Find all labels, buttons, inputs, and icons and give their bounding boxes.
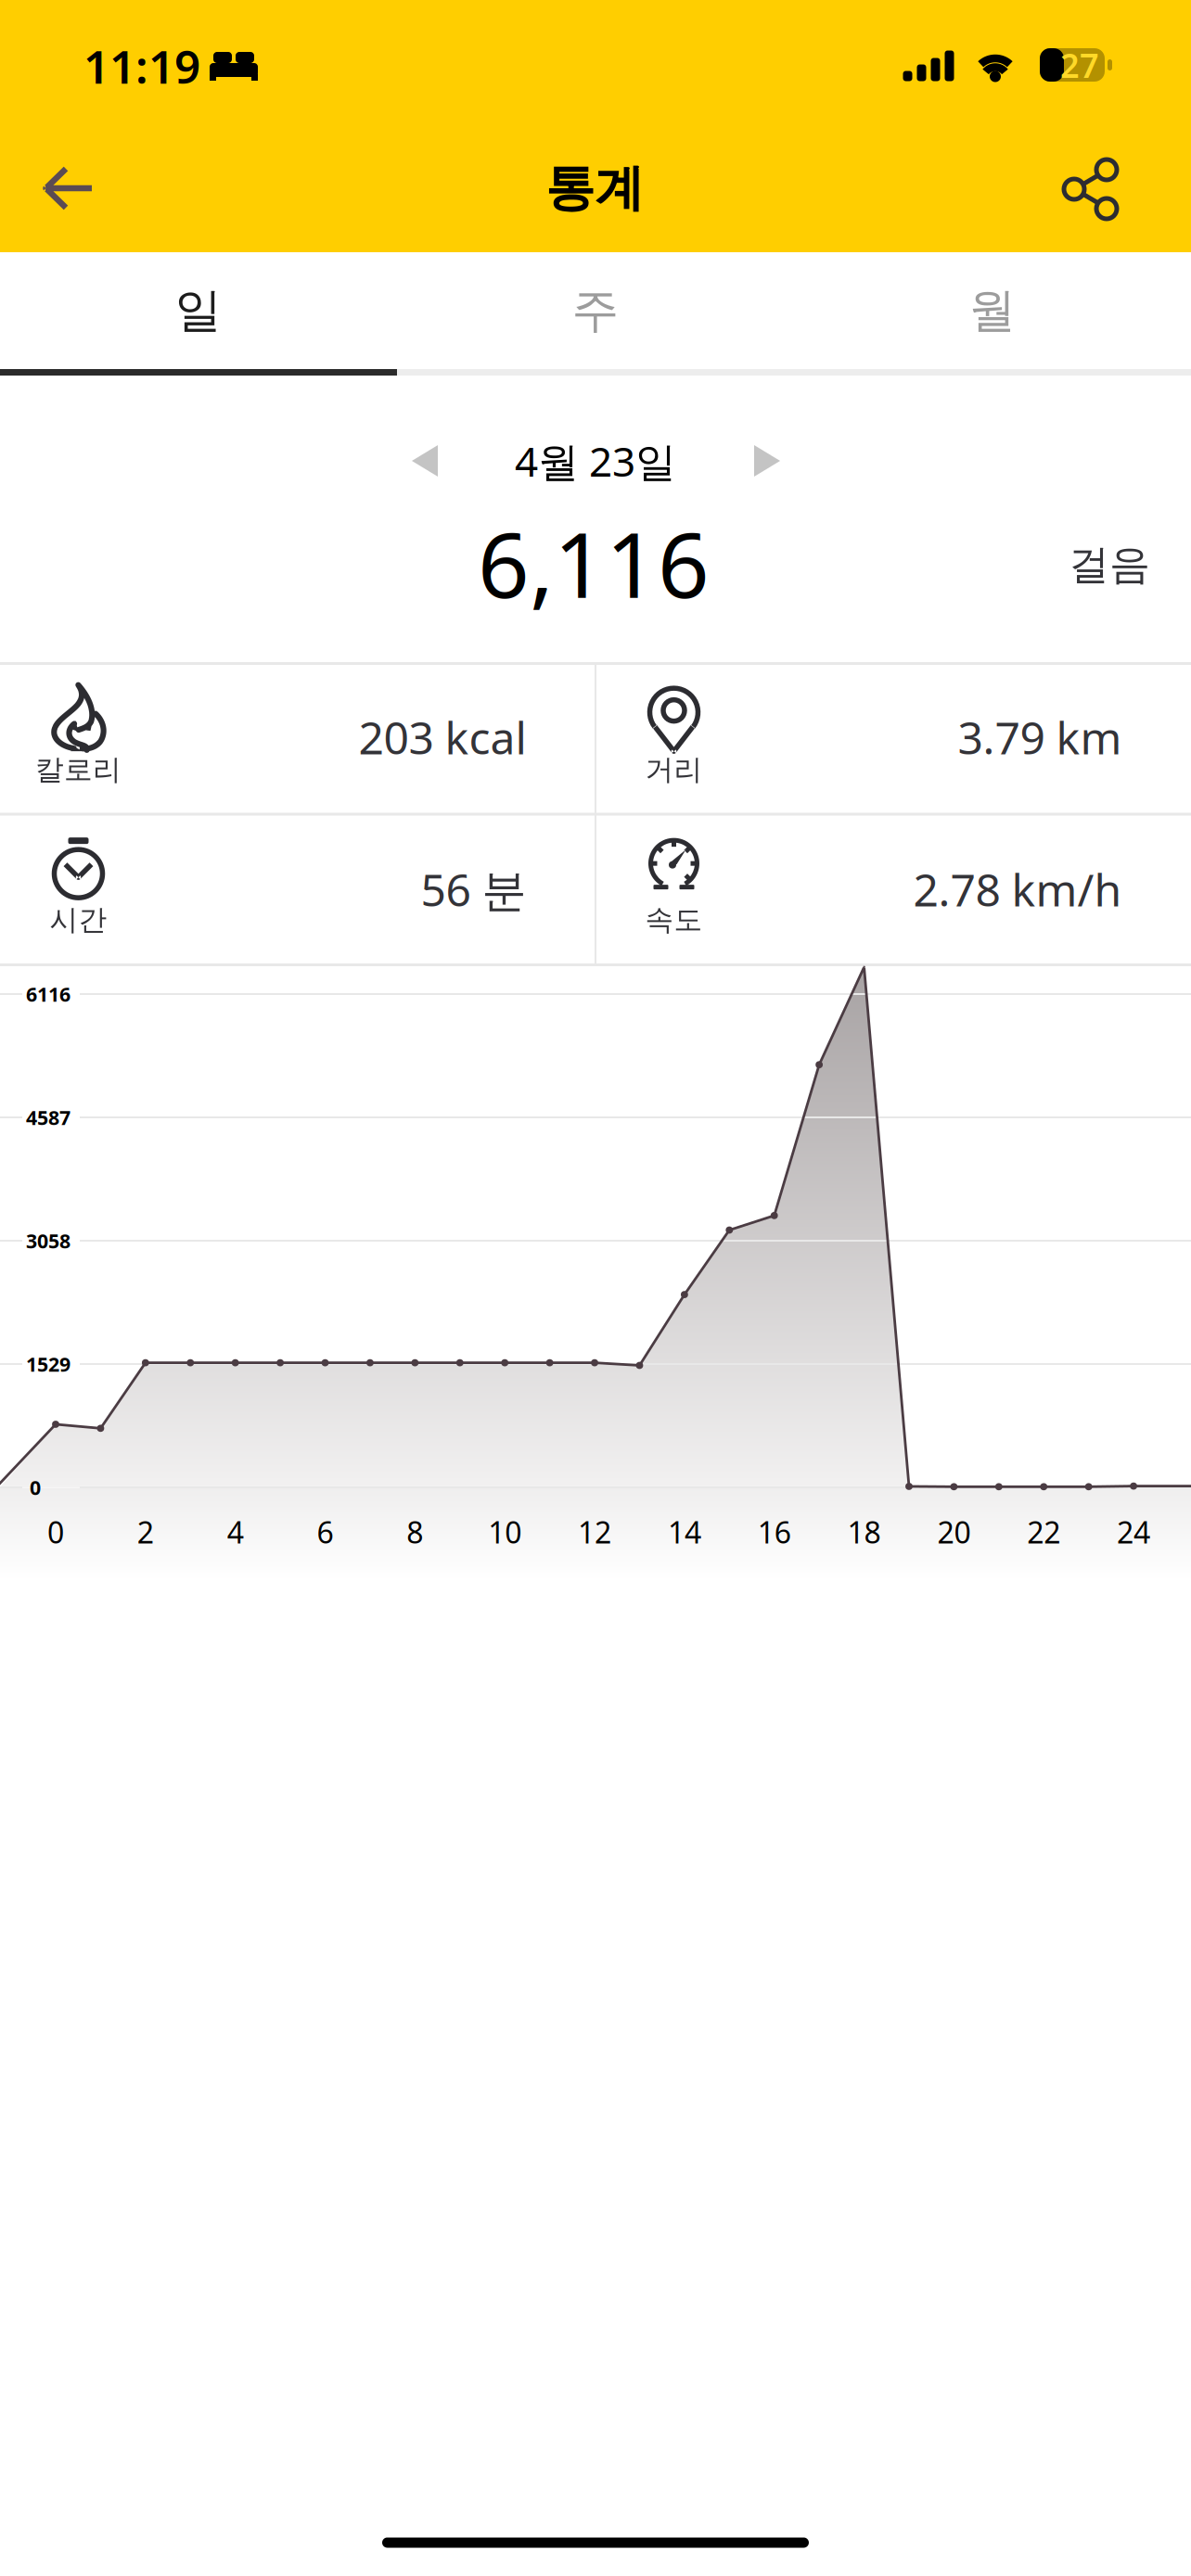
button[interactable]: Share — [1034, 130, 1146, 249]
button[interactable]: 주 — [397, 252, 794, 369]
staticText: 4월 23일 — [515, 434, 676, 488]
staticText: 18 — [847, 1512, 881, 1552]
staticText: 걸음 — [1069, 540, 1150, 590]
staticText: 주 — [572, 282, 619, 339]
staticText: 2 — [137, 1512, 154, 1552]
staticText: 일 — [175, 282, 222, 339]
staticText: 6 — [317, 1512, 333, 1552]
staticText: 속도 — [645, 902, 703, 937]
staticText: 시간 — [50, 902, 107, 937]
staticText: 8 — [407, 1512, 423, 1552]
staticText: 통계 — [545, 158, 644, 219]
staticText: 16 — [758, 1512, 791, 1552]
staticText: 56 분 — [421, 860, 526, 919]
button[interactable]: 칼로리 — [0, 663, 595, 811]
staticText: 칼로리 — [35, 752, 122, 787]
staticText: 6,116 — [478, 503, 710, 623]
staticText: 3.79 km — [958, 708, 1122, 767]
button[interactable]: 일 — [0, 252, 397, 369]
staticText: 27 — [1060, 43, 1099, 87]
staticText: 14 — [668, 1512, 701, 1552]
button[interactable]: 시간 — [0, 814, 595, 965]
staticText: 0 — [30, 1474, 41, 1500]
staticText: 거리 — [645, 752, 703, 787]
button[interactable]: Back — [13, 129, 124, 248]
staticText: 203 kcal — [359, 708, 526, 767]
staticText: 22 — [1027, 1512, 1060, 1552]
staticText: 3058 — [26, 1228, 70, 1254]
button[interactable]: 속도 — [596, 814, 1191, 965]
staticText: 1529 — [26, 1351, 70, 1377]
staticText: 24 — [1117, 1512, 1150, 1552]
staticText: 0 — [47, 1512, 64, 1552]
button[interactable]: 거리 — [596, 663, 1191, 811]
staticText: 11:19 — [83, 35, 200, 96]
staticText: 2.78 km/h — [913, 860, 1122, 919]
staticText: 6116 — [26, 981, 70, 1007]
button[interactable]: 월 — [794, 252, 1191, 369]
staticText: 월 — [969, 282, 1016, 339]
button[interactable]: Next day — [725, 428, 809, 493]
staticText: 4 — [227, 1512, 244, 1552]
staticText: 20 — [937, 1512, 971, 1552]
staticText: 4587 — [26, 1104, 70, 1130]
staticText: 12 — [578, 1512, 611, 1552]
staticText: 10 — [488, 1512, 521, 1552]
button[interactable]: Previous day — [383, 428, 467, 493]
